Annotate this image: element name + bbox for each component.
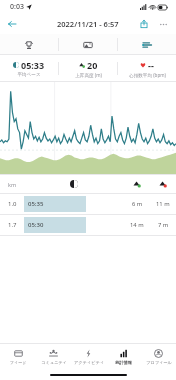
button[interactable]: Splits: [118, 34, 176, 55]
staticText: 11 m: [156, 200, 170, 208]
staticText: 05:30: [28, 221, 44, 229]
staticText: 2022/11/21 - 6:57: [57, 19, 119, 29]
staticText: 05:35: [28, 200, 44, 208]
staticText: 05:33: [21, 59, 45, 71]
staticText: 統計情報: [115, 360, 132, 365]
staticText: 1.0: [8, 200, 17, 208]
staticText: km: [8, 181, 17, 188]
button[interactable]: Back: [4, 16, 20, 32]
staticText: 上昇高度 (m): [75, 72, 102, 78]
staticText: アクティビティ: [74, 360, 104, 365]
staticText: コミュニティ: [41, 360, 67, 365]
button[interactable]: Share: [136, 16, 152, 32]
button[interactable]: More options: [155, 16, 171, 32]
button[interactable]: Photos: [59, 34, 117, 55]
staticText: 20: [87, 59, 98, 71]
staticText: 心拍数平均 (bpm): [129, 72, 166, 78]
button[interactable]: 1.0: [0, 194, 176, 214]
staticText: フィード: [9, 360, 27, 365]
staticText: 6 m: [132, 200, 143, 208]
button[interactable]: --: [118, 55, 176, 82]
button[interactable]: 20: [59, 55, 117, 82]
staticText: 1.7: [8, 221, 17, 229]
staticText: 7 m: [158, 221, 169, 229]
button[interactable]: フィード: [0, 344, 36, 370]
staticText: 0:03: [10, 2, 24, 12]
button[interactable]: 統計情報: [106, 344, 141, 370]
staticText: --: [148, 59, 154, 71]
button[interactable]: Achievements: [0, 34, 58, 55]
staticText: プロフィール: [146, 360, 172, 365]
staticText: 平均ペース: [17, 72, 41, 78]
button[interactable]: 1.7: [0, 215, 176, 235]
button[interactable]: プロフィール: [141, 344, 176, 370]
button[interactable]: コミュニティ: [36, 344, 71, 370]
button[interactable]: 05:33: [0, 55, 58, 82]
button[interactable]: アクティビティ: [71, 344, 106, 370]
staticText: 14 m: [130, 221, 144, 229]
